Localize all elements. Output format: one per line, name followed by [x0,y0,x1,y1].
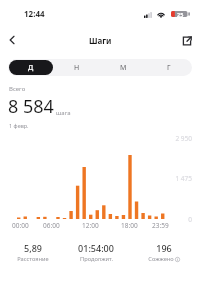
button[interactable]: 01:54:00 [64,242,128,263]
staticText: 2 950 [175,134,192,143]
staticText: шага [56,109,71,117]
staticText: Расстояние [17,255,49,263]
staticText: 01:54:00 [78,242,114,254]
staticText: 8 584 [8,94,54,119]
staticText: 1 февр. [9,122,29,129]
staticText: 0 [188,215,192,224]
staticText: Н [74,63,80,73]
staticText: 23:59 [152,221,169,230]
button[interactable]: 196 [132,242,196,263]
button[interactable]: Д [9,60,53,75]
staticText: 18:00 [121,221,138,230]
button[interactable]: Г [147,60,191,75]
staticText: 00:00 [12,221,29,230]
staticText: Сожжено [148,255,174,263]
button[interactable]: 5,89 [1,242,65,263]
staticText: Продолжит. [80,255,113,263]
button[interactable]: Share [176,30,198,52]
staticText: Г [167,63,171,73]
staticText: 06:00 [43,221,60,230]
button[interactable]: Н [55,60,99,75]
staticText: М [120,63,127,73]
button[interactable]: Back [1,29,23,51]
staticText: Д [28,63,34,73]
staticText: Шаги [89,35,112,46]
staticText: 5,89 [24,242,42,254]
staticText: 25 [177,11,184,18]
staticText: 196 [156,242,172,254]
staticText: Всего [9,85,26,93]
staticText: 1 475 [175,174,192,183]
staticText: 12:44 [24,8,45,19]
staticText: 12:00 [82,221,99,230]
button[interactable]: М [101,60,145,75]
